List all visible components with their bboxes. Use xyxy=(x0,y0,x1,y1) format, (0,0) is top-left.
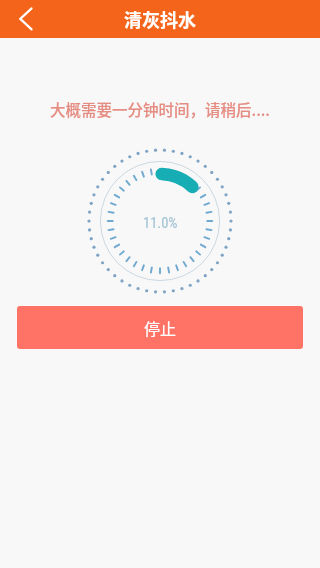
staticText: 11.0% xyxy=(143,215,178,232)
staticText: 停止 xyxy=(144,316,177,339)
staticText: 大概需要一分钟时间，请稍后.... xyxy=(0,98,320,120)
staticText: 清灰抖水 xyxy=(124,6,196,32)
button[interactable]: 停止 xyxy=(17,306,303,349)
button[interactable]: Back xyxy=(0,0,44,38)
